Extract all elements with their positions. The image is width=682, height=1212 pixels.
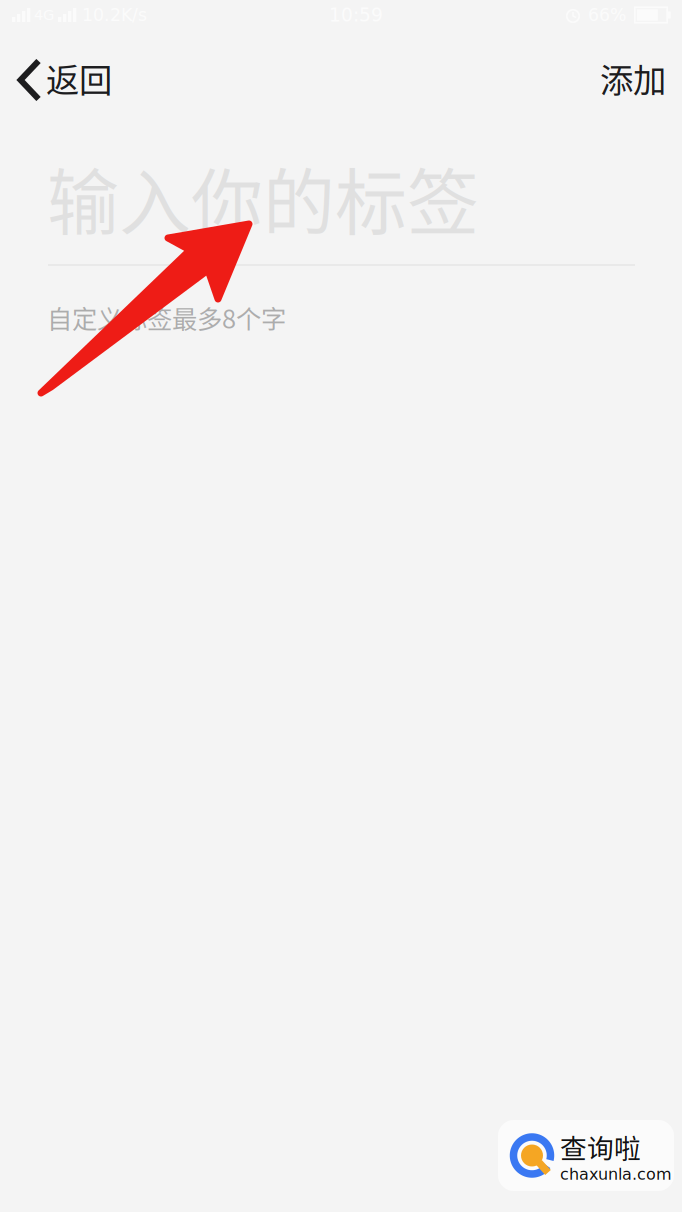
staticText: chaxunla.com [560, 1165, 672, 1184]
staticText: 输入你的标签 [47, 145, 479, 249]
button[interactable]: 添加 [580, 32, 682, 124]
staticText: 自定义标签最多8个字 [47, 299, 286, 336]
staticText: 查询啦 [560, 1127, 641, 1166]
staticText: 返回 [46, 54, 112, 102]
button[interactable]: 输入你的标签 [46, 124, 638, 266]
staticText: 添加 [600, 54, 666, 102]
button[interactable]: 返回 [0, 32, 128, 124]
